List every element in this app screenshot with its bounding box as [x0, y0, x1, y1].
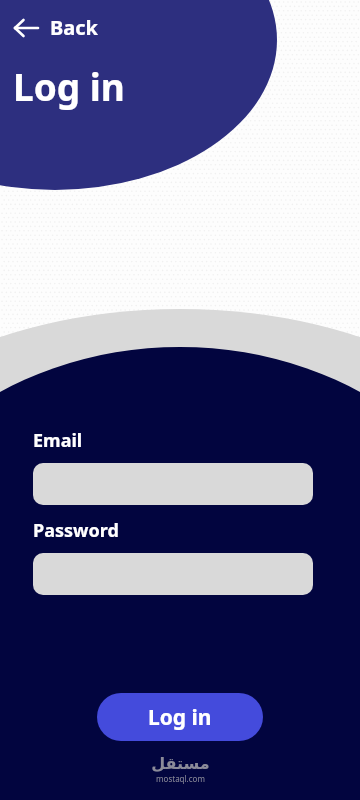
button[interactable]: Log in: [97, 693, 263, 741]
staticText: mostaql.com: [156, 773, 205, 784]
staticText: Email: [33, 428, 83, 453]
button[interactable]: [33, 553, 313, 595]
staticText: Back: [50, 14, 98, 41]
staticText: Password: [33, 518, 119, 543]
button[interactable]: Back: [8, 10, 104, 45]
staticText: مستقل: [151, 754, 210, 773]
staticText: Log in: [13, 61, 125, 111]
staticText: Log in: [148, 703, 212, 732]
button[interactable]: [33, 463, 313, 505]
